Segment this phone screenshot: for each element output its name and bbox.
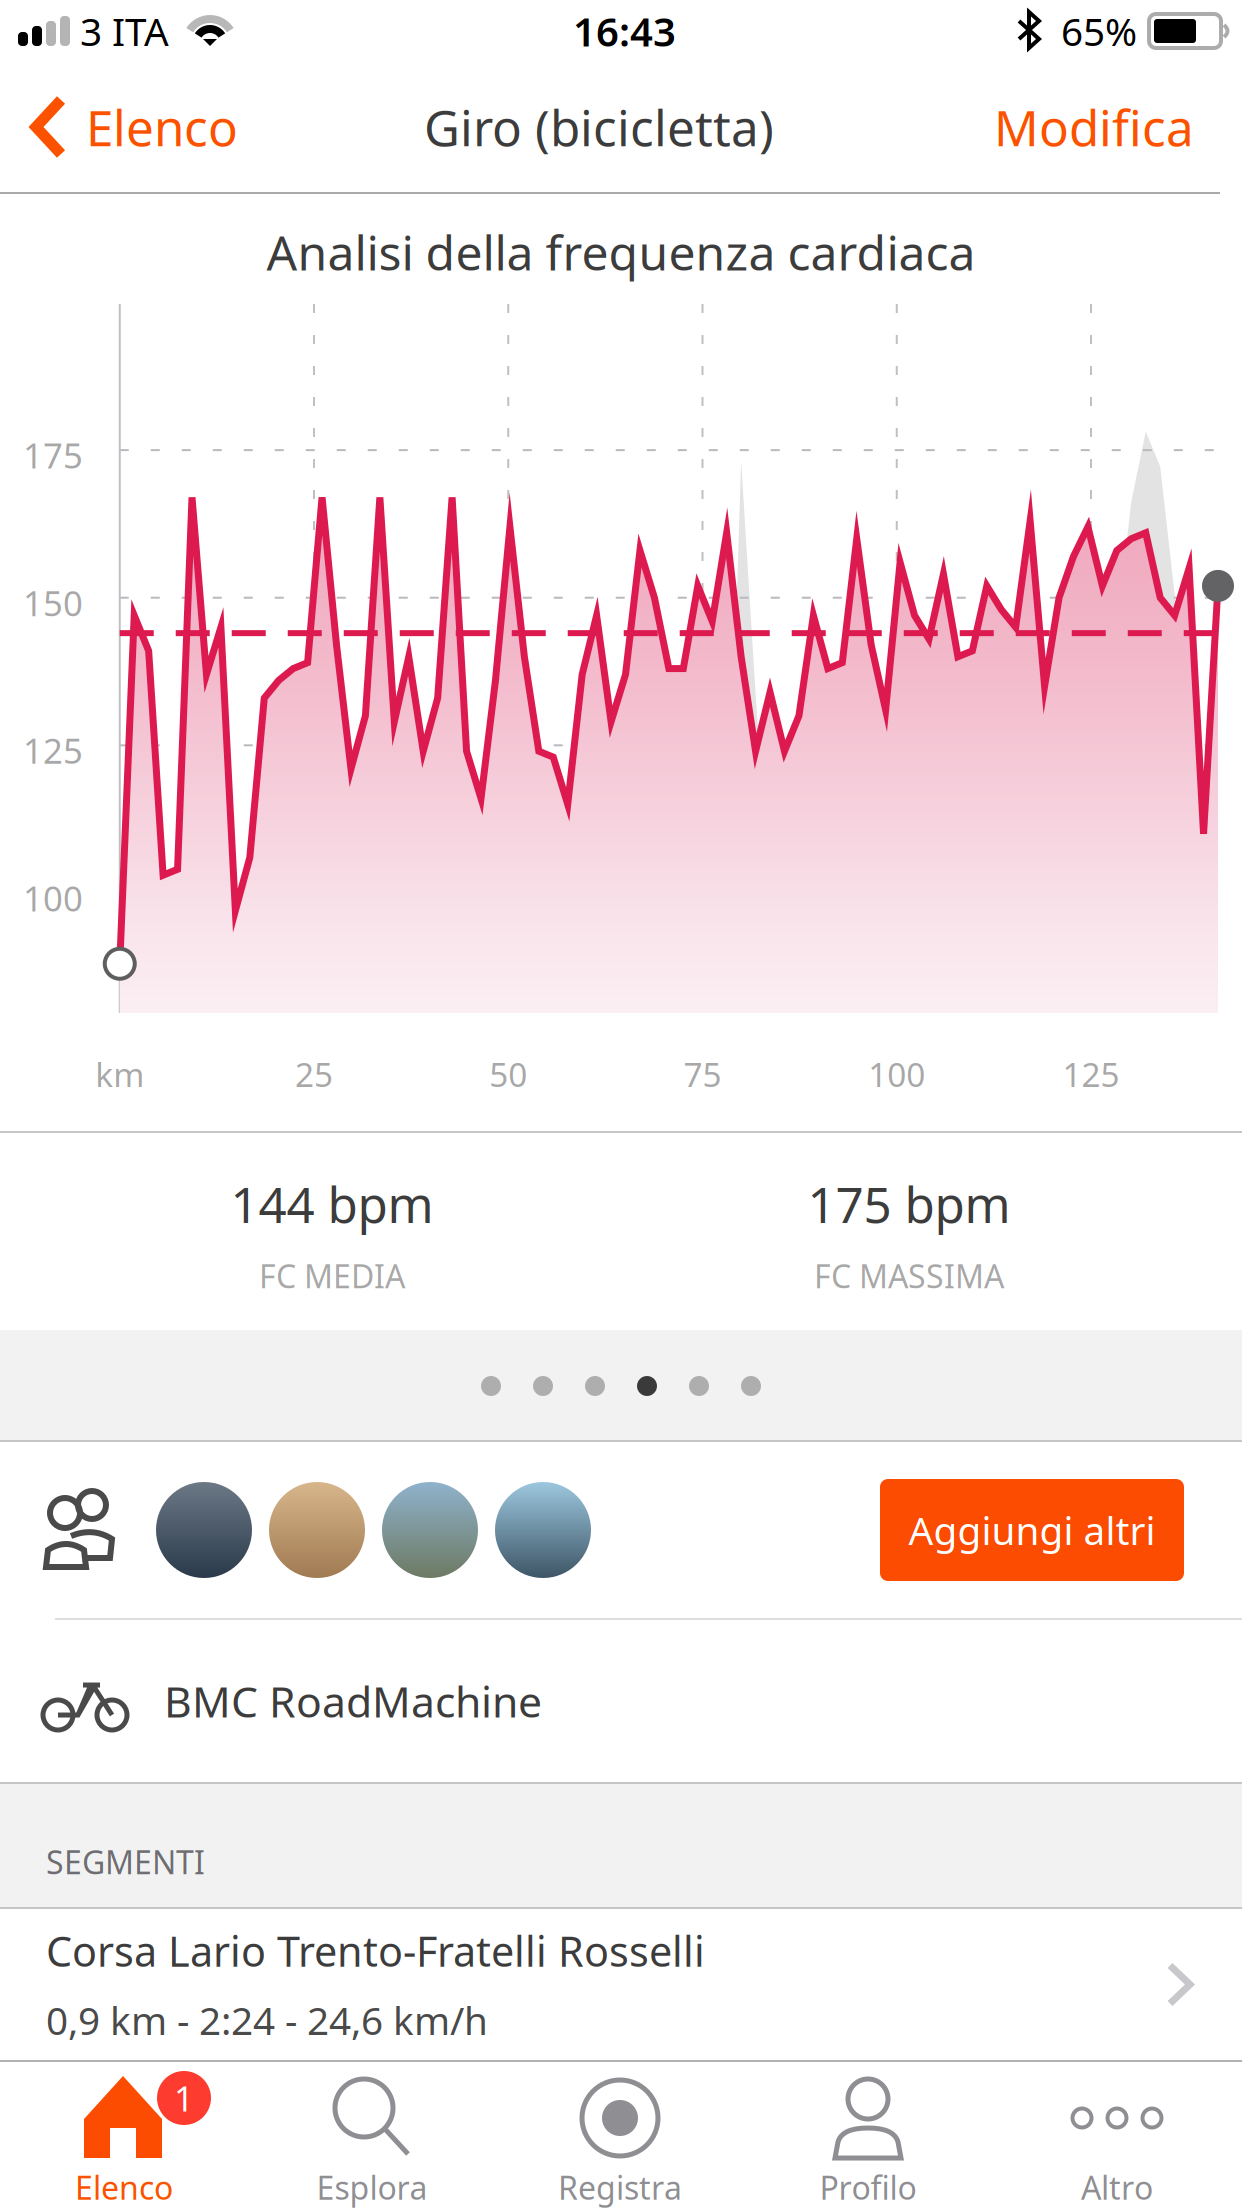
staticText: 0,9 km - 2:24 - 24,6 km/h xyxy=(46,1994,488,2046)
staticText: Corsa Lario Trento-Fratelli Rosselli xyxy=(46,1923,705,1978)
staticText: Elenco xyxy=(75,2166,173,2208)
staticText: Registra xyxy=(558,2166,682,2208)
staticText: Elenco xyxy=(86,94,238,160)
staticText: Modifica xyxy=(994,94,1194,160)
staticText: 1 xyxy=(174,2075,194,2121)
staticText: 150 xyxy=(23,580,83,626)
staticText: Analisi della frequenza cardiaca xyxy=(266,220,975,284)
button[interactable]: Modifica xyxy=(968,62,1220,192)
staticText: Profilo xyxy=(819,2166,916,2208)
button[interactable]: Registra xyxy=(496,2060,744,2208)
staticText: Giro (bicicletta) xyxy=(424,94,774,160)
staticText: 175 xyxy=(23,432,83,478)
staticText: 50 xyxy=(489,1052,527,1096)
button[interactable]: 1 xyxy=(0,2060,248,2208)
button[interactable]: Corsa Lario Trento-Fratelli Rosselli xyxy=(0,1909,1242,2060)
staticText: 100 xyxy=(23,875,83,921)
button[interactable]: Altro xyxy=(992,2060,1242,2208)
staticText: 100 xyxy=(868,1052,925,1096)
staticText: 65% xyxy=(1061,5,1137,57)
staticText: Aggiungi altri xyxy=(908,1504,1155,1556)
button[interactable]: Elenco xyxy=(0,62,258,192)
staticText: Esplora xyxy=(316,2166,427,2208)
staticText: 144 bpm xyxy=(230,1171,433,1236)
button[interactable]: Profilo xyxy=(744,2060,992,2208)
staticText: 16:43 xyxy=(573,4,676,57)
staticText: BMC RoadMachine xyxy=(164,1673,542,1729)
button[interactable]: Esplora xyxy=(248,2060,496,2208)
staticText: 125 xyxy=(23,727,83,773)
staticText: FC MASSIMA xyxy=(814,1254,1004,1297)
staticText: SEGMENTI xyxy=(46,1840,205,1883)
staticText: 125 xyxy=(1062,1052,1119,1096)
staticText: km xyxy=(95,1052,144,1096)
staticText: FC MEDIA xyxy=(259,1254,405,1297)
staticText: Altro xyxy=(1081,2166,1153,2208)
staticText: 75 xyxy=(683,1052,721,1096)
staticText: 25 xyxy=(295,1052,333,1096)
button[interactable]: Aggiungi altri xyxy=(880,1479,1184,1581)
staticText: 3 ITA xyxy=(80,5,169,57)
staticText: 175 bpm xyxy=(807,1171,1010,1236)
